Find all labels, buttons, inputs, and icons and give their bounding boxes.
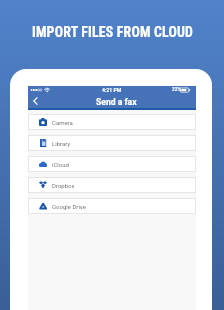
staticText: Dropbox <box>52 182 75 189</box>
button[interactable]: Library <box>28 135 196 151</box>
button[interactable]: Camera <box>28 114 196 130</box>
staticText: iCloud <box>52 161 69 168</box>
button[interactable]: iCloud <box>28 156 196 172</box>
staticText: Camera <box>52 119 73 126</box>
button[interactable]: Google Drive <box>28 198 196 214</box>
staticText: Library <box>52 140 71 147</box>
button[interactable]: Back <box>29 94 43 108</box>
staticText: 4:21 PM <box>102 87 122 93</box>
button[interactable]: Dropbox <box>28 177 196 193</box>
staticText: 22% <box>172 87 181 93</box>
staticText: Send a fax <box>96 97 137 107</box>
staticText: IMPORT FILES FROM CLOUD <box>32 24 193 40</box>
staticText: Google Drive <box>52 203 86 210</box>
